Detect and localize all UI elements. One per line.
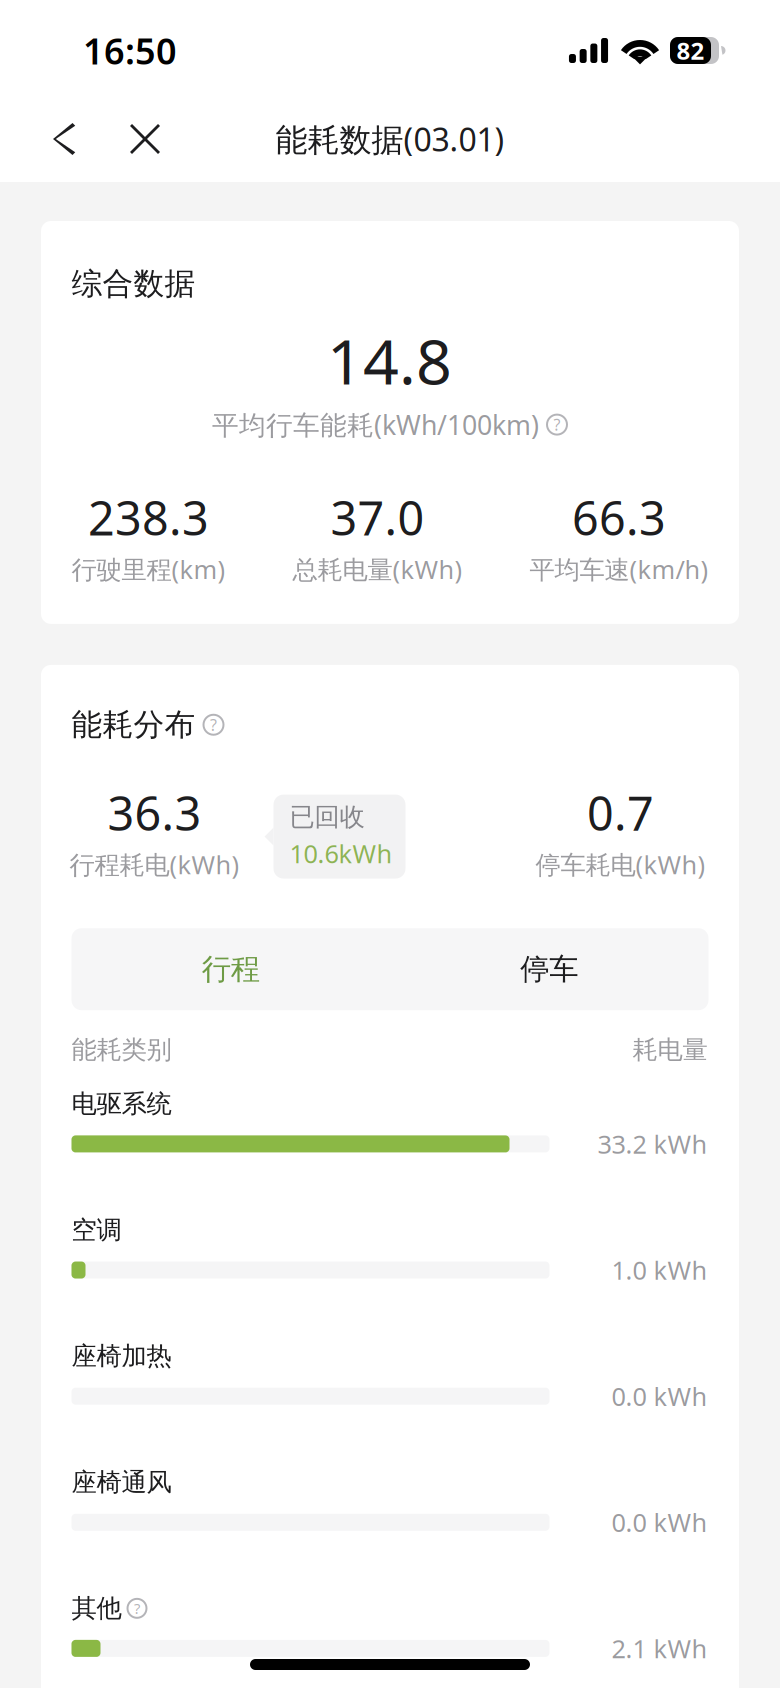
staticText: 座椅加热	[71, 1340, 171, 1372]
staticText: 33.2 kWh	[597, 1127, 707, 1161]
staticText: ?	[553, 414, 560, 435]
button[interactable]: 停车	[390, 928, 708, 1010]
staticText: 平均行车能耗(kWh/100km)	[212, 407, 539, 442]
staticText: 耗电量	[632, 1034, 707, 1065]
staticText: 10.6kWh	[289, 837, 392, 870]
staticText: 综合数据	[71, 265, 195, 303]
staticText: ?	[134, 1599, 140, 1618]
staticText: 总耗电量(kWh)	[292, 552, 462, 586]
staticText: 238.3	[88, 486, 209, 548]
staticText: 1.0 kWh	[611, 1253, 707, 1287]
staticText: 能耗分布	[71, 706, 195, 744]
staticText: 已回收	[289, 802, 364, 833]
staticText: 2.1 kWh	[611, 1632, 707, 1665]
staticText: 能耗数据(03.01)	[275, 118, 504, 160]
staticText: 37.0	[330, 486, 424, 548]
staticText: 36.3	[107, 782, 201, 844]
staticText: 座椅通风	[71, 1467, 171, 1498]
staticText: 16:50	[83, 27, 177, 74]
staticText: 0.0 kWh	[611, 1505, 707, 1539]
staticText: 停车	[520, 951, 578, 987]
staticText: 14.8	[327, 319, 452, 402]
staticText: 平均车速(km/h)	[529, 552, 708, 586]
staticText: 电驱系统	[71, 1088, 171, 1119]
staticText: 0.7	[587, 782, 654, 844]
staticText: 0.0 kWh	[611, 1379, 707, 1413]
button[interactable]: 返回	[35, 106, 91, 172]
staticText: 空调	[71, 1214, 121, 1245]
staticText: 停车耗电(kWh)	[535, 848, 705, 881]
staticText: 行程耗电(kWh)	[69, 848, 239, 881]
button[interactable]: 关闭	[117, 106, 173, 172]
staticText: 82	[676, 35, 704, 66]
button[interactable]: 行程	[71, 928, 390, 1010]
staticText: ?	[210, 714, 217, 735]
staticText: 66.3	[572, 486, 666, 548]
staticText: 行驶里程(km)	[71, 552, 225, 586]
staticText: 其他	[71, 1593, 121, 1624]
staticText: 行程	[202, 951, 260, 987]
staticText: 能耗类别	[71, 1034, 171, 1065]
